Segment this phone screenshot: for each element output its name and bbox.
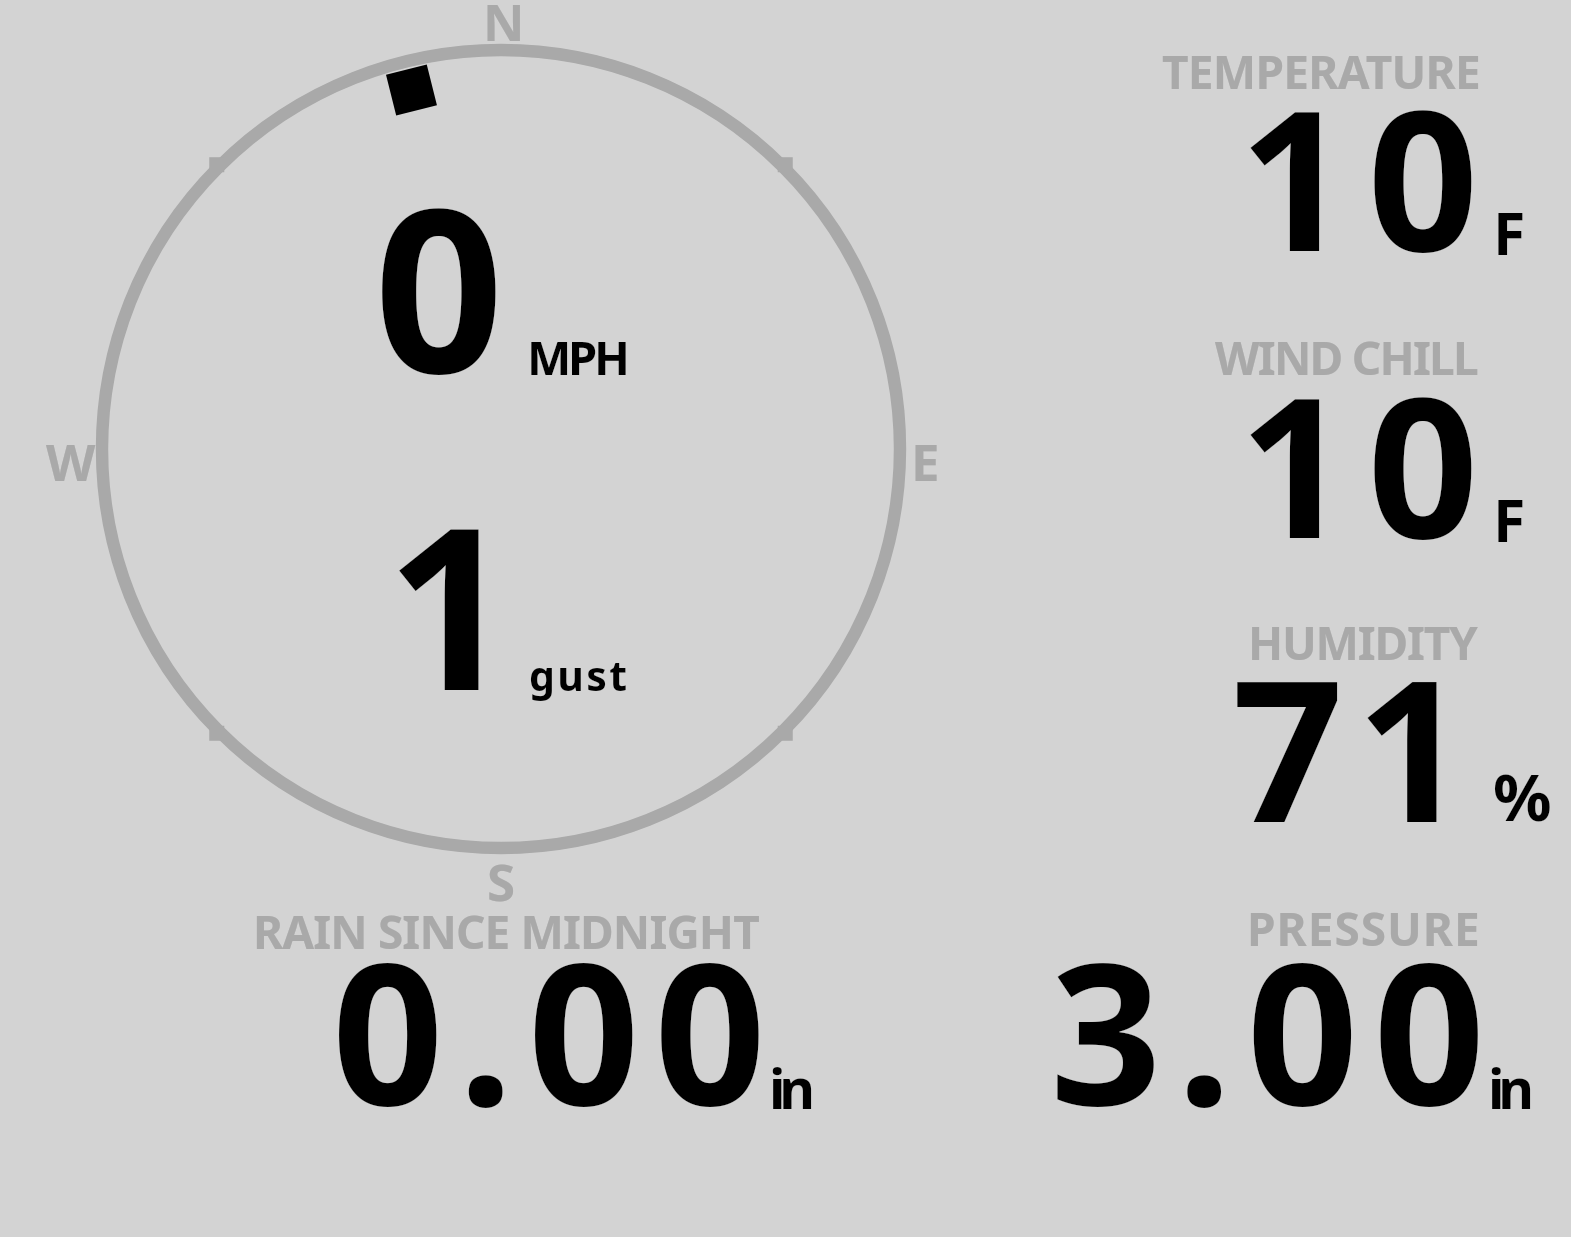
button[interactable]: Wind chill 10 degrees F xyxy=(1140,316,1560,556)
staticText: 10 xyxy=(1239,331,1497,571)
staticText: 1 xyxy=(386,451,515,756)
staticText: PRESSURE xyxy=(1247,897,1481,960)
staticText: TEMPERATURE xyxy=(1162,40,1480,103)
staticText: F xyxy=(1493,192,1526,272)
staticText: F xyxy=(1493,479,1526,559)
button[interactable]: Pressure 3.00 inches xyxy=(1010,890,1560,1125)
staticText: N xyxy=(483,0,525,55)
staticText: 3.00 xyxy=(1050,897,1501,1132)
staticText: 71 xyxy=(1232,614,1481,854)
staticText: HUMIDITY xyxy=(1248,611,1477,674)
button[interactable]: Temperature 10 degrees F xyxy=(1140,30,1560,270)
staticText: in xyxy=(769,1050,809,1125)
staticText: % xyxy=(1493,752,1552,841)
staticText: 0 xyxy=(374,130,504,439)
staticText: 10 xyxy=(1239,44,1497,284)
button[interactable]: Wind speed and direction xyxy=(90,35,920,870)
staticText: RAIN SINCE MIDNIGHT xyxy=(253,900,759,963)
staticText: in xyxy=(1488,1050,1528,1125)
staticText: E xyxy=(911,426,940,495)
staticText: 0.00 xyxy=(332,897,781,1132)
staticText: MPH xyxy=(527,325,627,389)
staticText: S xyxy=(487,846,516,915)
staticText: gust xyxy=(529,647,630,703)
button[interactable]: Humidity 71 percent xyxy=(1140,601,1560,841)
button[interactable]: Rain since midnight 0.00 inches xyxy=(230,890,850,1125)
staticText: W xyxy=(46,426,96,495)
staticText: WIND CHILL xyxy=(1215,326,1477,389)
